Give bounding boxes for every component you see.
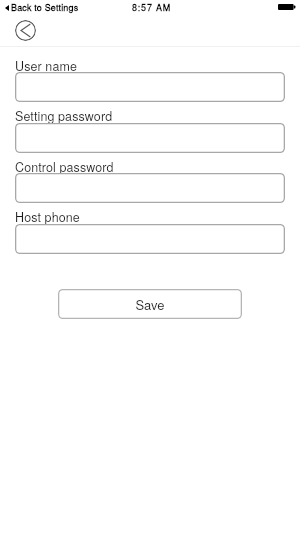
button[interactable]: Save [58,289,242,319]
button[interactable] [15,224,285,254]
staticText: User name [15,57,78,75]
button[interactable]: Back to Settings [5,1,79,14]
button[interactable] [15,173,285,203]
other: Battery full [278,4,295,10]
staticText: Save [135,295,165,314]
staticText: Back to Settings [11,1,79,14]
button[interactable] [15,123,285,153]
button[interactable]: Back [15,20,36,41]
button[interactable] [15,72,285,102]
staticText: Host phone [15,208,80,226]
staticText: Control password [15,158,114,176]
staticText: 8:57 AM [132,1,172,14]
staticText: Setting password [15,107,113,125]
